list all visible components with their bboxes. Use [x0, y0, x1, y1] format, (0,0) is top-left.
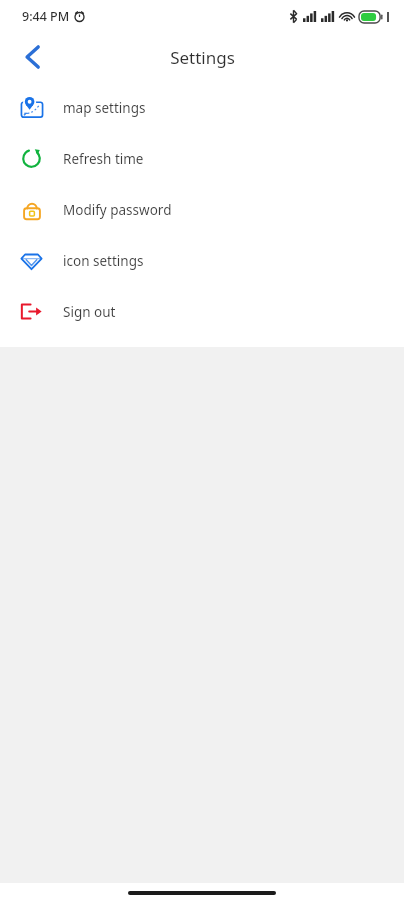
button[interactable]: Back: [8, 33, 56, 81]
staticText: Modify password: [63, 201, 172, 219]
staticText: Refresh time: [63, 150, 144, 168]
button[interactable]: Modify password: [0, 184, 404, 235]
button[interactable]: Sign out: [0, 286, 404, 337]
staticText: Settings: [170, 46, 235, 69]
staticText: Sign out: [63, 303, 116, 321]
button[interactable]: icon settings: [0, 235, 404, 286]
button[interactable]: map settings: [0, 82, 404, 133]
staticText: 9:44 PM: [22, 8, 70, 25]
staticText: map settings: [63, 99, 146, 117]
staticText: icon settings: [63, 252, 144, 270]
button[interactable]: Refresh time: [0, 133, 404, 184]
